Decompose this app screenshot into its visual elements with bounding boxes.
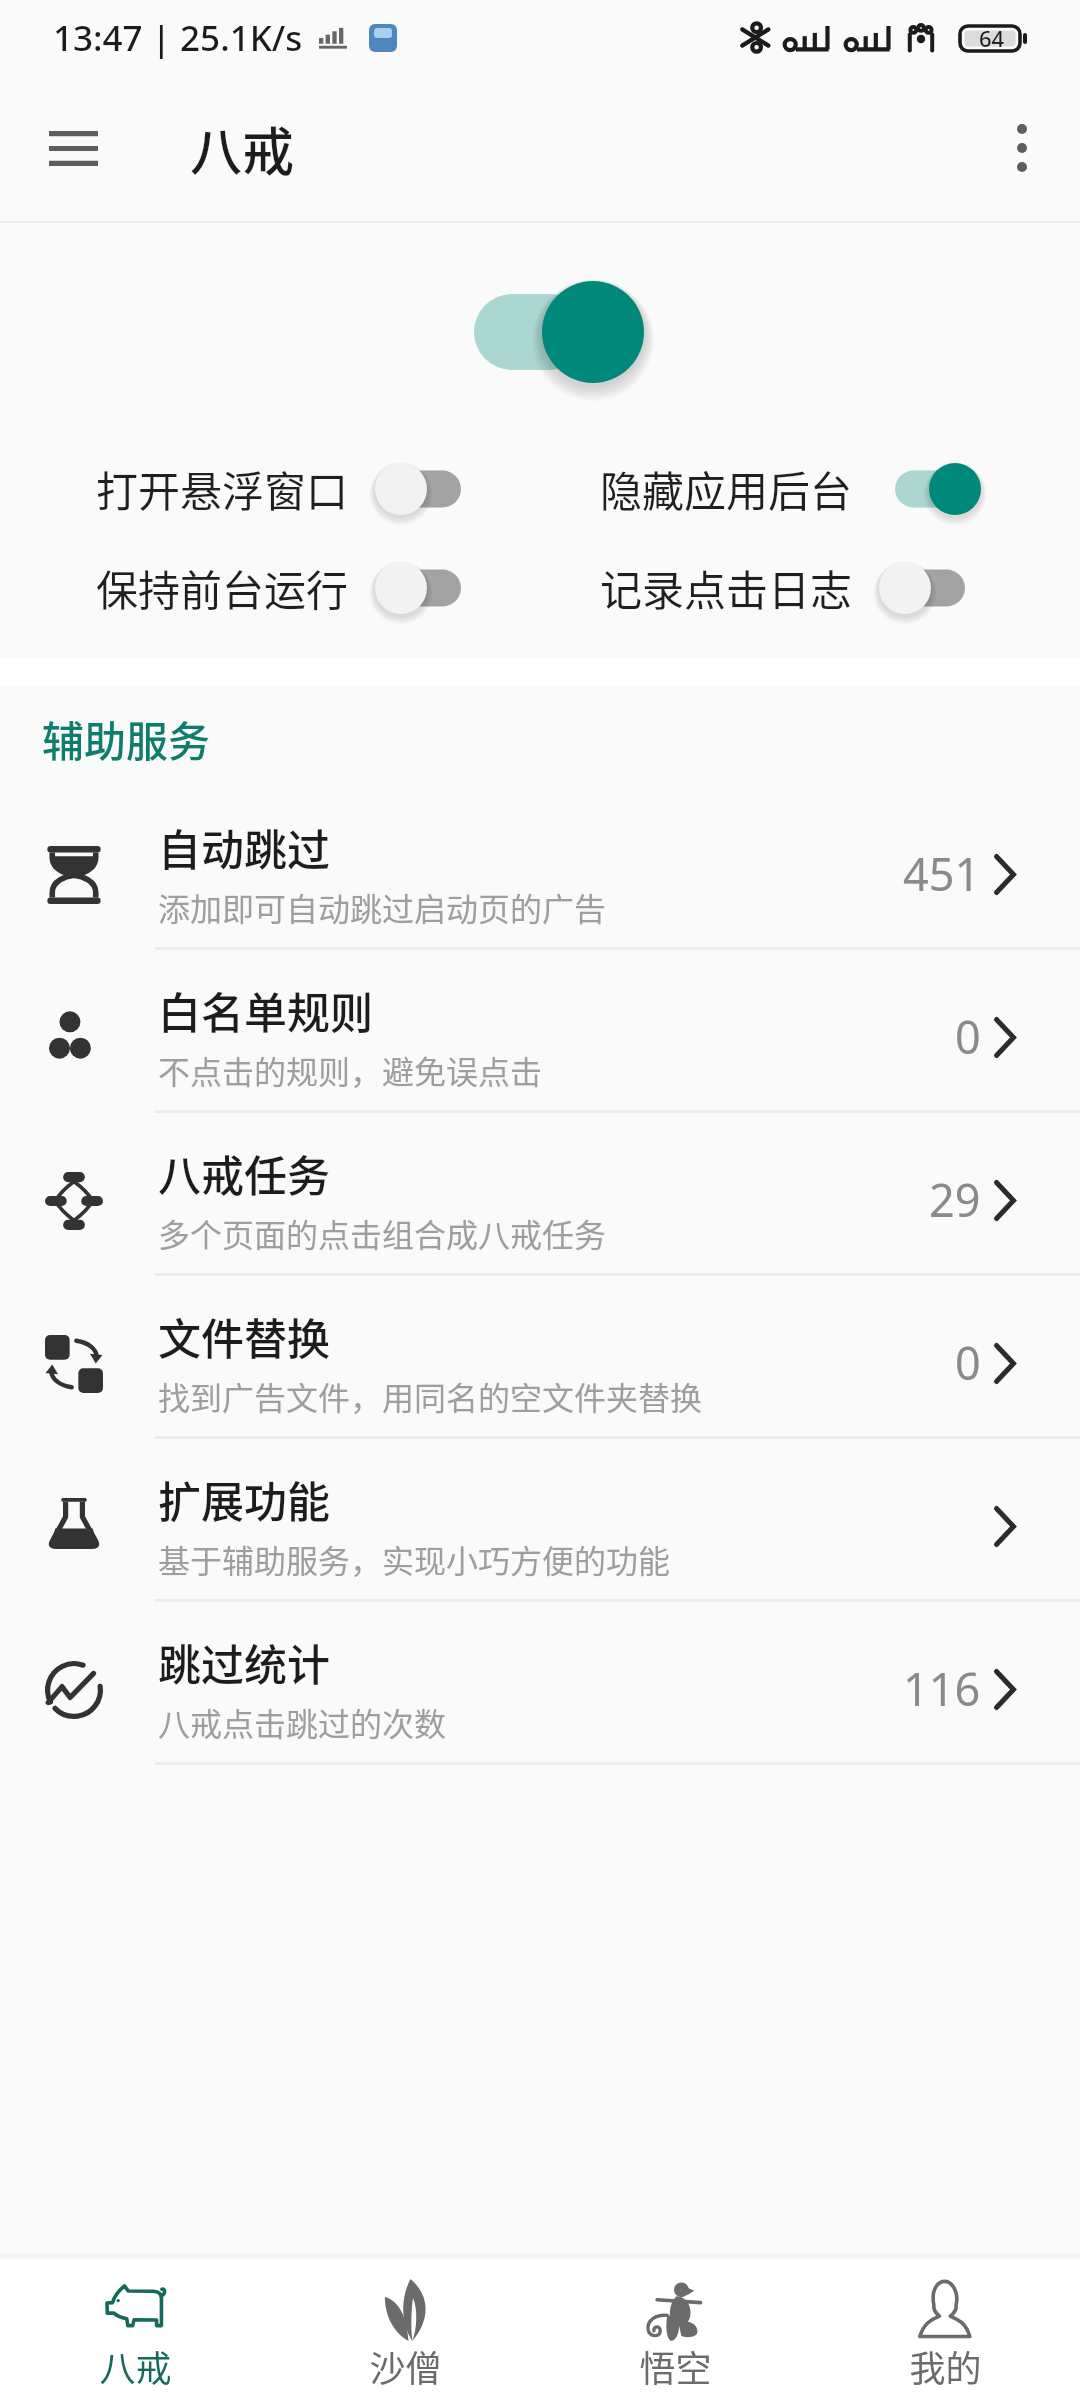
staticText: 文件替换 [158,1305,330,1367]
staticText: 116 [903,1658,981,1719]
staticText: 0 [955,1332,981,1393]
button[interactable]: 悟空 [540,2260,810,2400]
staticText: 多个页面的点击组合成八戒任务 [158,1210,607,1256]
staticText: 保持前台运行 [96,557,349,618]
button[interactable]: 文件替换 [0,1276,1080,1439]
button[interactable]: 隐藏应用后台 [540,439,1080,538]
button[interactable]: More options [934,75,1027,221]
staticText: 基于辅助服务，实现小巧方便的功能 [158,1536,671,1582]
staticText: 跳过统计 [158,1631,330,1693]
staticText: 辅助服务 [42,708,211,769]
button[interactable]: 沙僧 [270,2260,540,2400]
staticText: 白名单规则 [158,979,373,1041]
button[interactable]: 记录点击日志 [540,538,1080,637]
staticText: 沙僧 [369,2340,442,2392]
staticText: 八戒点击跳过的次数 [158,1699,447,1745]
button[interactable]: 白名单规则 [0,950,1080,1113]
button[interactable]: Menu [0,75,146,221]
button[interactable]: 跳过统计 [0,1602,1080,1765]
button[interactable]: 扩展功能 [0,1439,1080,1602]
staticText: 隐藏应用后台 [600,458,853,519]
staticText: 八戒 [99,2340,172,2392]
staticText: 添加即可自动跳过启动页的广告 [158,884,607,930]
staticText: 0 [955,1006,981,1067]
staticText: 八戒 [190,111,295,186]
staticText: 悟空 [639,2340,712,2392]
staticText: 13:47 | 25.1K/s [53,14,303,62]
button[interactable]: 我的 [810,2260,1080,2400]
button[interactable]: 保持前台运行 [0,538,540,637]
staticText: 打开悬浮窗口 [96,458,349,519]
staticText: 扩展功能 [158,1468,330,1530]
staticText: 找到广告文件，用同名的空文件夹替换 [158,1373,703,1419]
staticText: 不点击的规则，避免误点击 [158,1047,543,1093]
staticText: 451 [903,843,981,904]
staticText: 29 [929,1169,981,1230]
button[interactable]: Main service toggle [474,281,644,383]
staticText: 我的 [909,2340,982,2392]
staticText: 64 [979,23,1005,53]
staticText: 自动跳过 [158,816,330,878]
button[interactable]: 自动跳过 [0,787,1080,950]
button[interactable]: 八戒 [0,2260,270,2400]
button[interactable]: 八戒任务 [0,1113,1080,1276]
button[interactable]: 打开悬浮窗口 [0,439,540,538]
staticText: 八戒任务 [158,1142,330,1204]
staticText: 记录点击日志 [600,557,853,618]
